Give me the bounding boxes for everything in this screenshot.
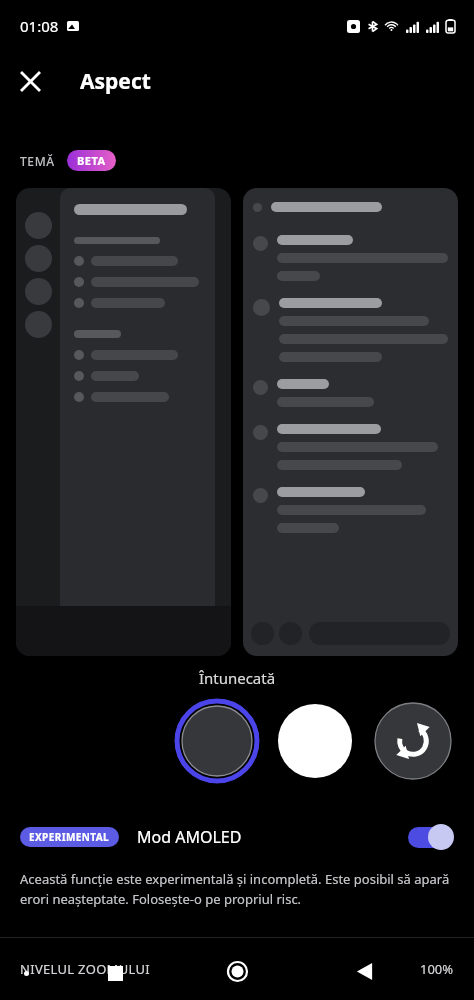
staticText: Aspect: [80, 67, 151, 96]
staticText: Această funcție este experimentală și in…: [20, 870, 454, 908]
staticText: Întunecată: [0, 668, 474, 688]
button[interactable]: [16, 188, 231, 656]
button[interactable]: Light theme: [272, 698, 358, 784]
button[interactable]: Follow system theme: [370, 698, 456, 784]
staticText: BETA: [77, 153, 106, 168]
button[interactable]: Dark theme: [174, 698, 260, 784]
staticText: 01:08: [20, 16, 59, 36]
button[interactable]: Recent apps: [98, 956, 132, 990]
staticText: 100%: [420, 960, 454, 978]
button[interactable]: EXPERIMENTAL: [0, 816, 474, 858]
staticText: EXPERIMENTAL: [29, 830, 110, 844]
button[interactable]: BETA: [67, 150, 116, 171]
button[interactable]: Back: [344, 951, 384, 991]
staticText: Mod AMOLED: [137, 826, 242, 848]
button[interactable]: Close: [6, 57, 54, 105]
staticText: TEMĂ: [20, 153, 55, 169]
button[interactable]: Home: [217, 951, 257, 991]
button[interactable]: NIVELUL ZOOMULUI: [0, 938, 474, 1000]
staticText: NIVELUL ZOOMULUI: [20, 960, 150, 978]
button[interactable]: [243, 188, 458, 656]
